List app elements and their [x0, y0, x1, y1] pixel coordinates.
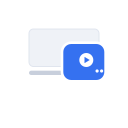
button[interactable]: Play video — [0, 0, 128, 128]
